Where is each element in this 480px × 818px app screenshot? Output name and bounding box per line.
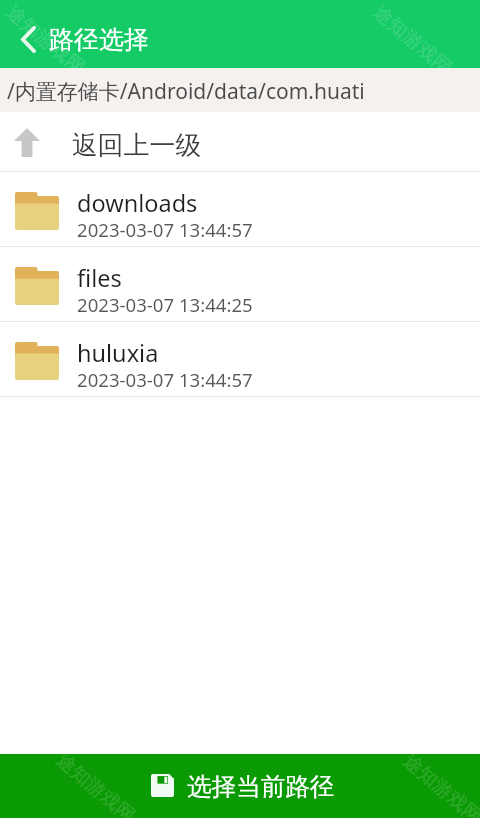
staticText: files <box>77 262 122 294</box>
staticText: 2023-03-07 13:44:57 <box>77 217 253 242</box>
staticText: /内置存储卡/Android/data/com.huati <box>7 77 365 106</box>
staticText: 2023-03-07 13:44:25 <box>77 292 253 317</box>
button[interactable]: downloads <box>0 172 480 246</box>
staticText: 2023-03-07 13:44:57 <box>77 367 253 392</box>
button[interactable]: files <box>0 247 480 321</box>
button[interactable]: 返回上一级 <box>0 112 480 171</box>
staticText: 途知游戏网 <box>51 754 140 818</box>
staticText: 途知游戏网 <box>1 0 90 68</box>
staticText: downloads <box>77 187 198 219</box>
button[interactable]: huluxia <box>0 322 480 396</box>
staticText: 选择当前路径 <box>187 771 335 802</box>
staticText: 返回上一级 <box>72 129 201 162</box>
staticText: huluxia <box>77 337 159 369</box>
staticText: 路径选择 <box>49 24 149 55</box>
button[interactable]: Back <box>0 0 56 68</box>
staticText: 途知游戏网 <box>368 0 457 68</box>
staticText: 途知游戏网 <box>398 754 480 818</box>
button[interactable]: 选择当前路径 <box>0 754 480 818</box>
